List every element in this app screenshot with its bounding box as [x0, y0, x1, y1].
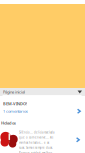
staticText: Página inicial: [3, 89, 25, 95]
staticText: Silêncio... delicia revelada: [19, 131, 54, 134]
button[interactable]: Helados: [0, 118, 85, 153]
staticText: minhas helados... e as: [19, 141, 49, 144]
button[interactable]: Página inicial: [0, 88, 85, 96]
staticText: Helados: [1, 120, 16, 126]
staticText: suas. Somos sempre duas.: [19, 146, 53, 149]
staticText: que o som envolve... As: [19, 136, 53, 139]
staticText: BEM-VINDO!: [3, 101, 27, 106]
staticText: Porque a vida é melhor.: [19, 151, 53, 153]
button[interactable]: BEM-VINDO!: [0, 96, 85, 118]
staticText: 1 comentarios: [3, 109, 28, 114]
